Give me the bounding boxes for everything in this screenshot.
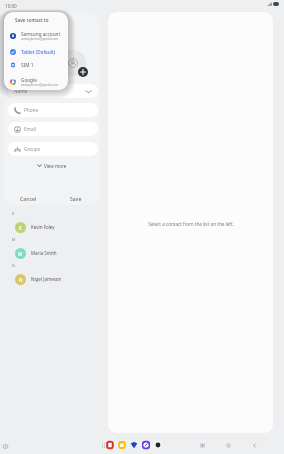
staticText: Groups [24, 146, 41, 152]
button[interactable]: Internet [129, 440, 139, 450]
staticText: N [12, 263, 15, 268]
staticText: Save contact to [15, 17, 49, 23]
staticText: Kevin Foley [31, 224, 55, 230]
staticText: M [18, 251, 23, 257]
staticText: zoetaylorxm@gmail.com [21, 37, 59, 41]
staticText: 10:00 [5, 3, 17, 9]
button[interactable]: Samsung account [4, 29, 68, 42]
staticText: Select a contact from the list on the le… [148, 221, 234, 227]
button[interactable]: Google [4, 75, 68, 88]
button[interactable]: M [0, 243, 104, 263]
button[interactable]: Home [221, 438, 235, 452]
button[interactable]: Email [8, 122, 98, 136]
button[interactable]: Phone [8, 103, 98, 117]
staticText: Name [14, 88, 28, 94]
staticText: View more [44, 163, 67, 169]
staticText: Cancel [20, 195, 37, 202]
staticText: SIM 1 [21, 62, 34, 68]
staticText: K [12, 211, 15, 216]
staticText: Phone [24, 107, 39, 113]
button[interactable]: Add photo [78, 67, 88, 77]
staticText: Samsung account [21, 31, 61, 37]
button[interactable]: Samsung Notes [105, 440, 115, 450]
staticText: N [19, 277, 23, 283]
button[interactable]: Contact photo [60, 50, 86, 76]
staticText: zoetaylorxm@gmail.com [21, 83, 59, 87]
button[interactable]: Galaxy Store [141, 440, 151, 450]
button[interactable]: Recents [195, 438, 209, 452]
button[interactable]: Cancel [4, 191, 52, 205]
button[interactable]: Save [52, 191, 100, 205]
button[interactable]: Multi window [1, 442, 10, 451]
button[interactable]: K [0, 217, 104, 237]
button[interactable]: N [0, 269, 104, 289]
button[interactable]: SIM 1 [4, 58, 68, 71]
staticText: Email [24, 126, 37, 132]
button[interactable]: Name [8, 84, 98, 98]
button[interactable]: My Files [117, 440, 127, 450]
staticText: M [12, 237, 16, 242]
button[interactable]: Camera [153, 440, 163, 450]
staticText: Maria Smith [31, 250, 57, 256]
staticText: K [19, 225, 22, 231]
staticText: Tablet (Default) [21, 49, 56, 55]
button[interactable]: Back [247, 438, 261, 452]
button[interactable]: Tablet (Default) [4, 45, 68, 58]
button[interactable]: Groups [8, 142, 98, 156]
staticText: Google [21, 77, 37, 83]
button[interactable]: All apps [100, 441, 109, 450]
staticText: Nigel Jameson [31, 276, 62, 282]
staticText: Save [70, 195, 82, 202]
button[interactable]: View more [4, 159, 100, 172]
